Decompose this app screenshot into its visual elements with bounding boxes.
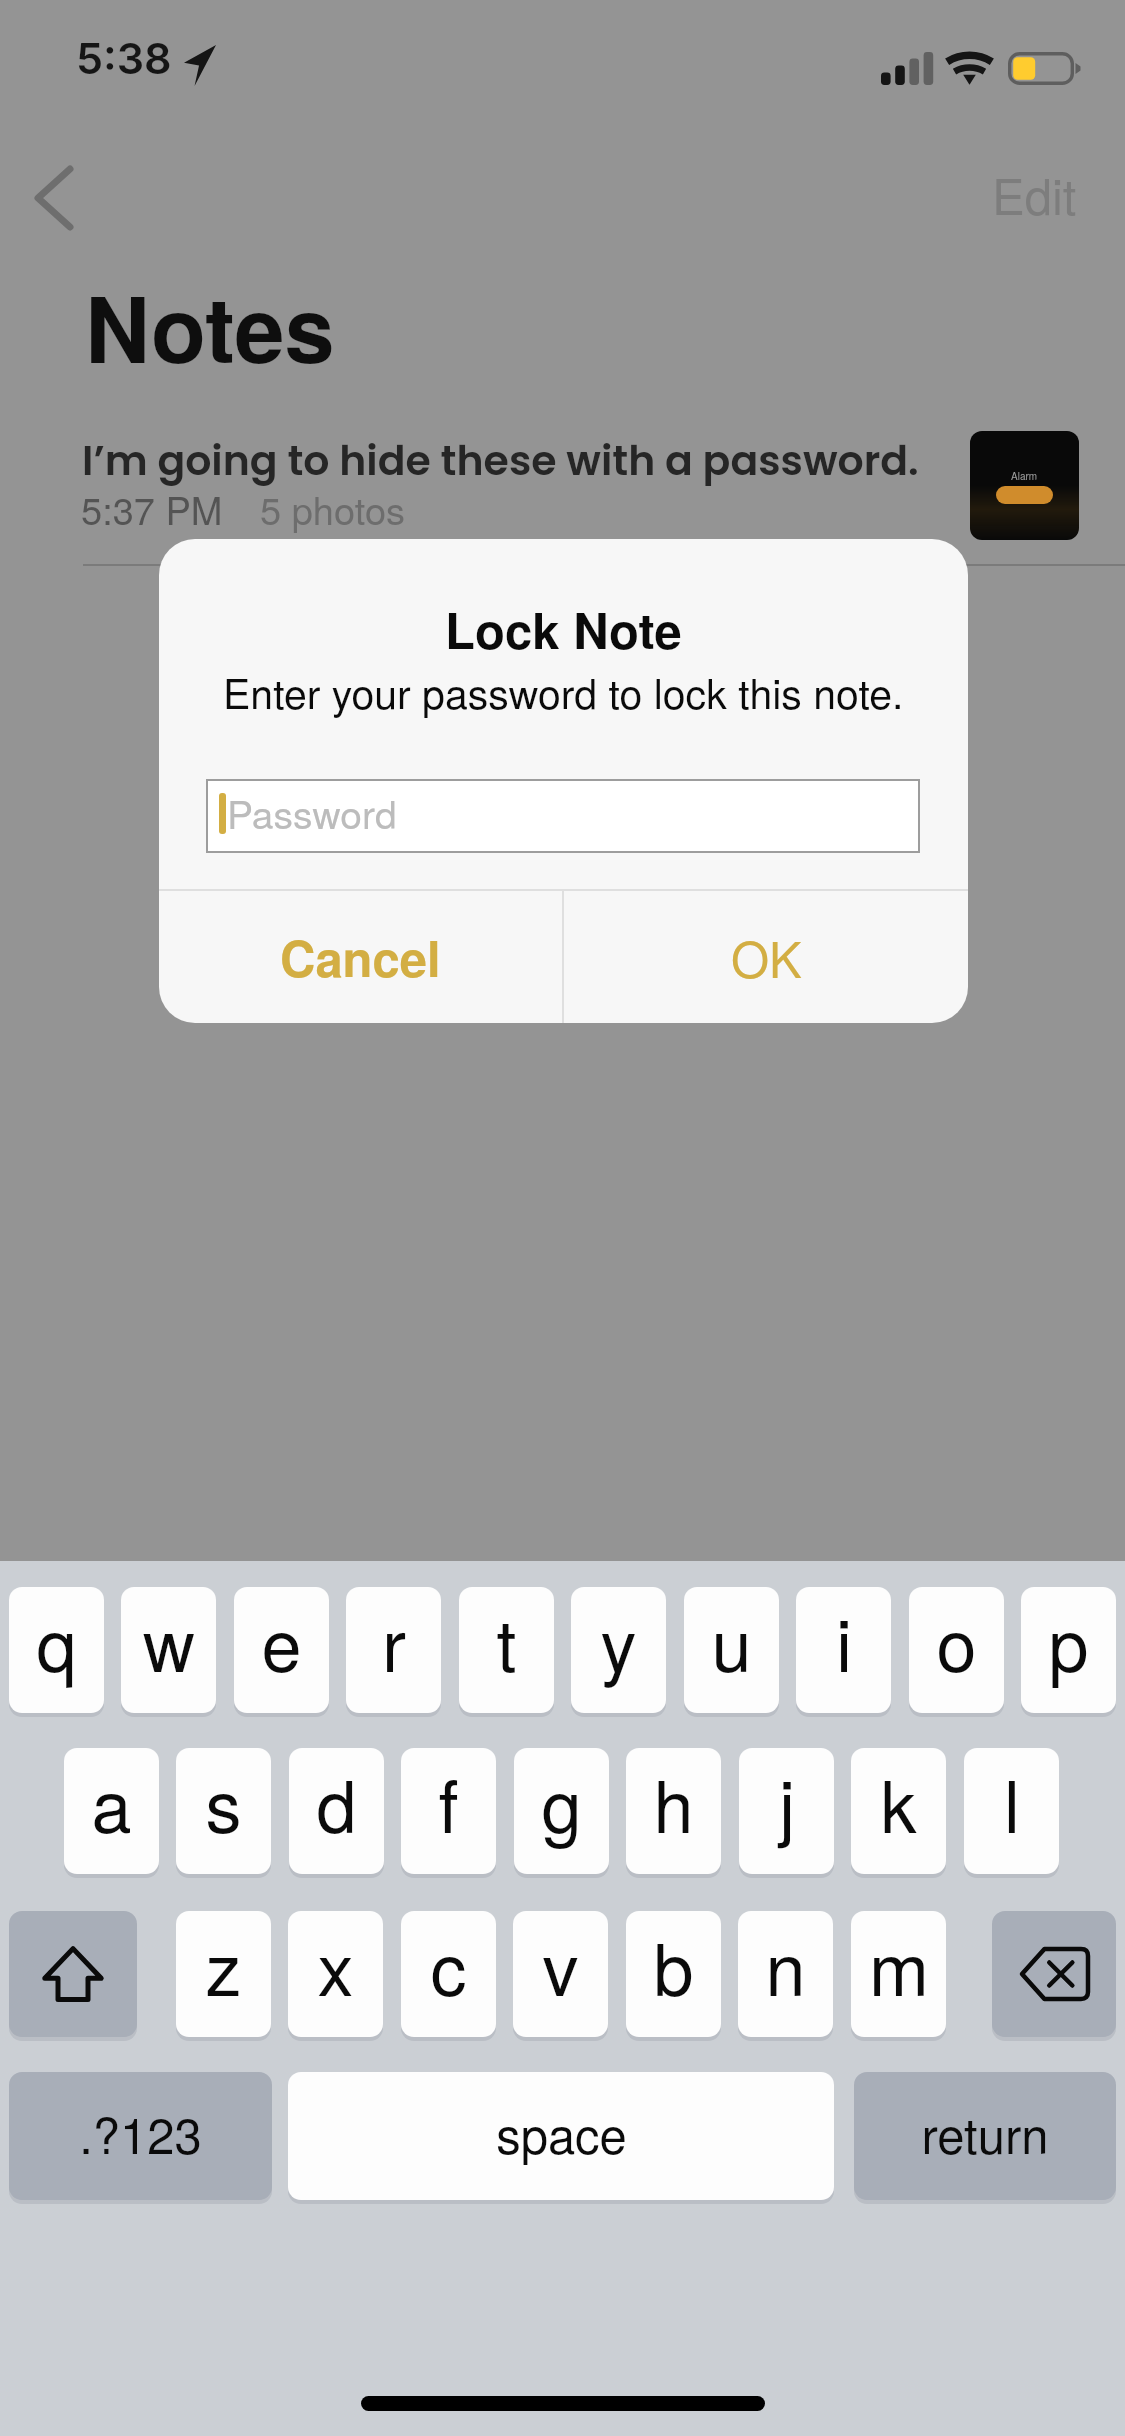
staticText: a: [91, 1750, 132, 1853]
button[interactable]: m: [851, 1911, 946, 2042]
button[interactable]: return: [854, 2072, 1116, 2205]
staticText: d: [316, 1750, 357, 1853]
staticText: c: [430, 1913, 467, 2016]
staticText: v: [542, 1913, 579, 2016]
button[interactable]: space: [288, 2072, 834, 2205]
staticText: y: [600, 1589, 637, 1692]
staticText: .?123: [79, 2098, 202, 2168]
button[interactable]: f: [401, 1748, 496, 1879]
staticText: z: [205, 1913, 242, 2016]
staticText: x: [317, 1913, 354, 2016]
button[interactable]: q: [9, 1587, 104, 1718]
button[interactable]: Backspace: [992, 1911, 1116, 2042]
button[interactable]: Cancel: [159, 891, 562, 1023]
button[interactable]: v: [513, 1911, 608, 2042]
button[interactable]: s: [176, 1748, 271, 1879]
button[interactable]: b: [626, 1911, 721, 2042]
staticText: h: [653, 1750, 694, 1853]
button[interactable]: a: [64, 1748, 159, 1879]
button[interactable]: c: [401, 1911, 496, 2042]
staticText: m: [869, 1913, 929, 2016]
button[interactable]: g: [514, 1748, 609, 1879]
button[interactable]: Edit: [970, 140, 1102, 228]
button[interactable]: p: [1021, 1587, 1116, 1718]
staticText: Notes: [85, 262, 335, 391]
staticText: n: [765, 1913, 806, 2016]
staticText: k: [880, 1750, 917, 1853]
staticText: Edit: [992, 159, 1077, 229]
staticText: j: [779, 1750, 795, 1853]
button[interactable]: OK: [564, 891, 968, 1023]
staticText: p: [1048, 1589, 1089, 1692]
button[interactable]: Back: [8, 152, 96, 244]
button[interactable]: n: [738, 1911, 833, 2042]
staticText: Cancel: [280, 922, 441, 992]
button[interactable]: .?123: [9, 2072, 272, 2205]
button[interactable]: i: [796, 1587, 891, 1718]
staticText: b: [653, 1913, 694, 2016]
staticText: t: [496, 1589, 517, 1692]
staticText: OK: [731, 922, 802, 992]
button[interactable]: w: [121, 1587, 216, 1718]
button[interactable]: e: [234, 1587, 329, 1718]
staticText: Alarm: [1011, 469, 1038, 483]
button[interactable]: h: [626, 1748, 721, 1879]
staticText: s: [205, 1750, 242, 1853]
button[interactable]: z: [176, 1911, 271, 2042]
staticText: space: [496, 2098, 627, 2168]
staticText: Enter your password to lock this note.: [223, 662, 904, 721]
button[interactable]: t: [459, 1587, 554, 1718]
button[interactable]: x: [288, 1911, 383, 2042]
button[interactable]: Password: [206, 779, 920, 853]
staticText: 5:37 PM: [81, 481, 223, 535]
button[interactable]: k: [851, 1748, 946, 1879]
staticText: w: [143, 1589, 195, 1692]
staticText: q: [36, 1589, 77, 1692]
button[interactable]: d: [289, 1748, 384, 1879]
button[interactable]: r: [346, 1587, 441, 1718]
button[interactable]: j: [739, 1748, 834, 1879]
staticText: f: [438, 1750, 459, 1853]
staticText: Password: [227, 784, 397, 840]
staticText: r: [382, 1589, 406, 1692]
staticText: o: [936, 1589, 977, 1692]
button[interactable]: I’m going to hide these with a password.: [0, 418, 1125, 564]
staticText: e: [261, 1589, 302, 1692]
staticText: 5 photos: [260, 481, 406, 535]
staticText: i: [836, 1589, 852, 1692]
button[interactable]: Shift: [9, 1911, 137, 2042]
staticText: 5:38: [76, 32, 172, 84]
staticText: Lock Note: [445, 594, 682, 664]
button[interactable]: l: [964, 1748, 1059, 1879]
staticText: I’m going to hide these with a password.: [82, 432, 919, 489]
button[interactable]: o: [909, 1587, 1004, 1718]
staticText: g: [541, 1750, 582, 1853]
button[interactable]: y: [571, 1587, 666, 1718]
staticText: u: [711, 1589, 752, 1692]
button[interactable]: u: [684, 1587, 779, 1718]
staticText: l: [1004, 1750, 1020, 1853]
staticText: return: [921, 2098, 1049, 2168]
